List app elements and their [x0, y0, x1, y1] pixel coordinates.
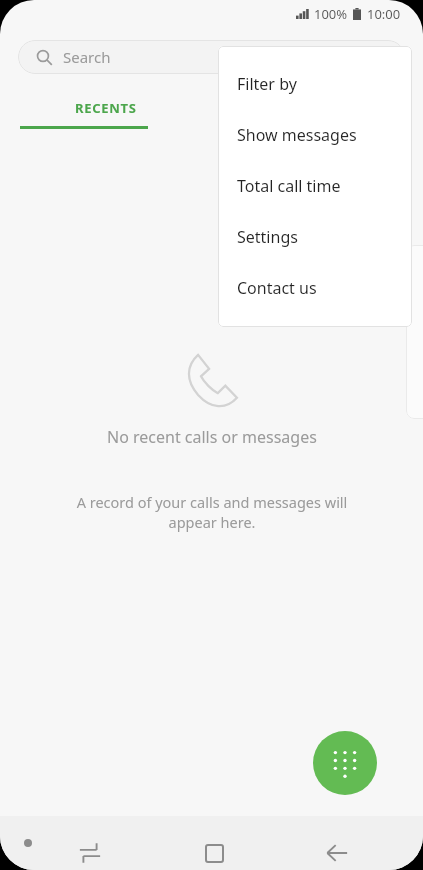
button[interactable]: Back	[311, 827, 363, 870]
staticText: Show messages	[237, 124, 357, 146]
button[interactable]: RECENTS	[0, 89, 211, 126]
button[interactable]: CONTACTS	[211, 89, 423, 126]
staticText: 10:00	[367, 5, 401, 23]
button[interactable]: Keypad	[313, 731, 377, 795]
staticText: A record of your calls and messages will…	[59, 492, 365, 532]
button[interactable]: Total call time	[218, 160, 412, 211]
staticText: Search	[63, 47, 111, 67]
staticText: Contact us	[237, 277, 317, 299]
staticText: RECENTS	[75, 99, 137, 117]
button[interactable]: Settings	[218, 211, 412, 262]
button[interactable]: Show messages	[218, 109, 412, 160]
button[interactable]: Recents	[64, 827, 116, 870]
staticText: Filter by	[237, 73, 297, 95]
staticText: No recent calls or messages	[107, 426, 317, 448]
button[interactable]: Search	[18, 40, 405, 74]
button[interactable]: Filter by	[218, 58, 412, 109]
button[interactable]: Contact us	[218, 262, 412, 313]
button[interactable]: More options indicator	[24, 839, 32, 847]
staticText: Total call time	[237, 175, 341, 197]
button[interactable]: Home	[188, 827, 240, 870]
staticText: 100%	[314, 5, 348, 23]
staticText: Settings	[237, 226, 298, 248]
